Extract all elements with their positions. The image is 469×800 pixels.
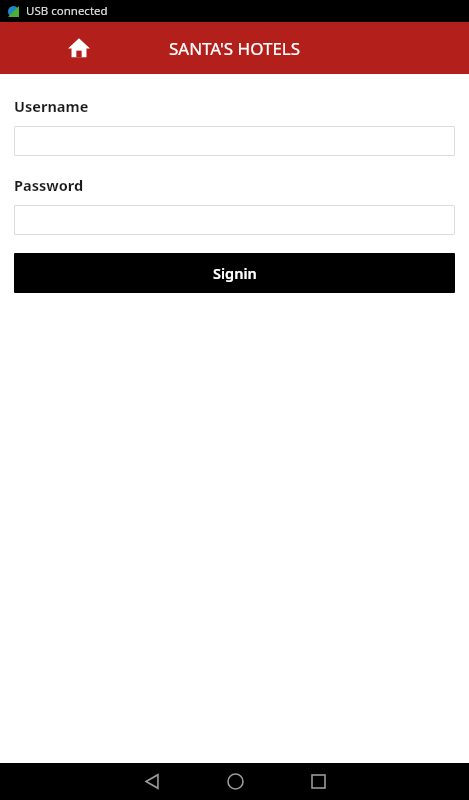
staticText: SANTA'S HOTELS [0,37,469,60]
button[interactable]: Text input [14,126,455,156]
button[interactable]: Home [58,27,100,69]
button[interactable]: Text input [14,205,455,235]
button[interactable]: Recent apps [298,763,338,800]
button[interactable]: Signin [14,253,455,293]
staticText: Signin [213,263,257,283]
button[interactable]: Back [132,763,172,800]
staticText: USB connected [26,3,108,19]
button[interactable]: Home [215,763,255,800]
staticText: Password [14,175,84,195]
staticText: Username [14,96,89,116]
